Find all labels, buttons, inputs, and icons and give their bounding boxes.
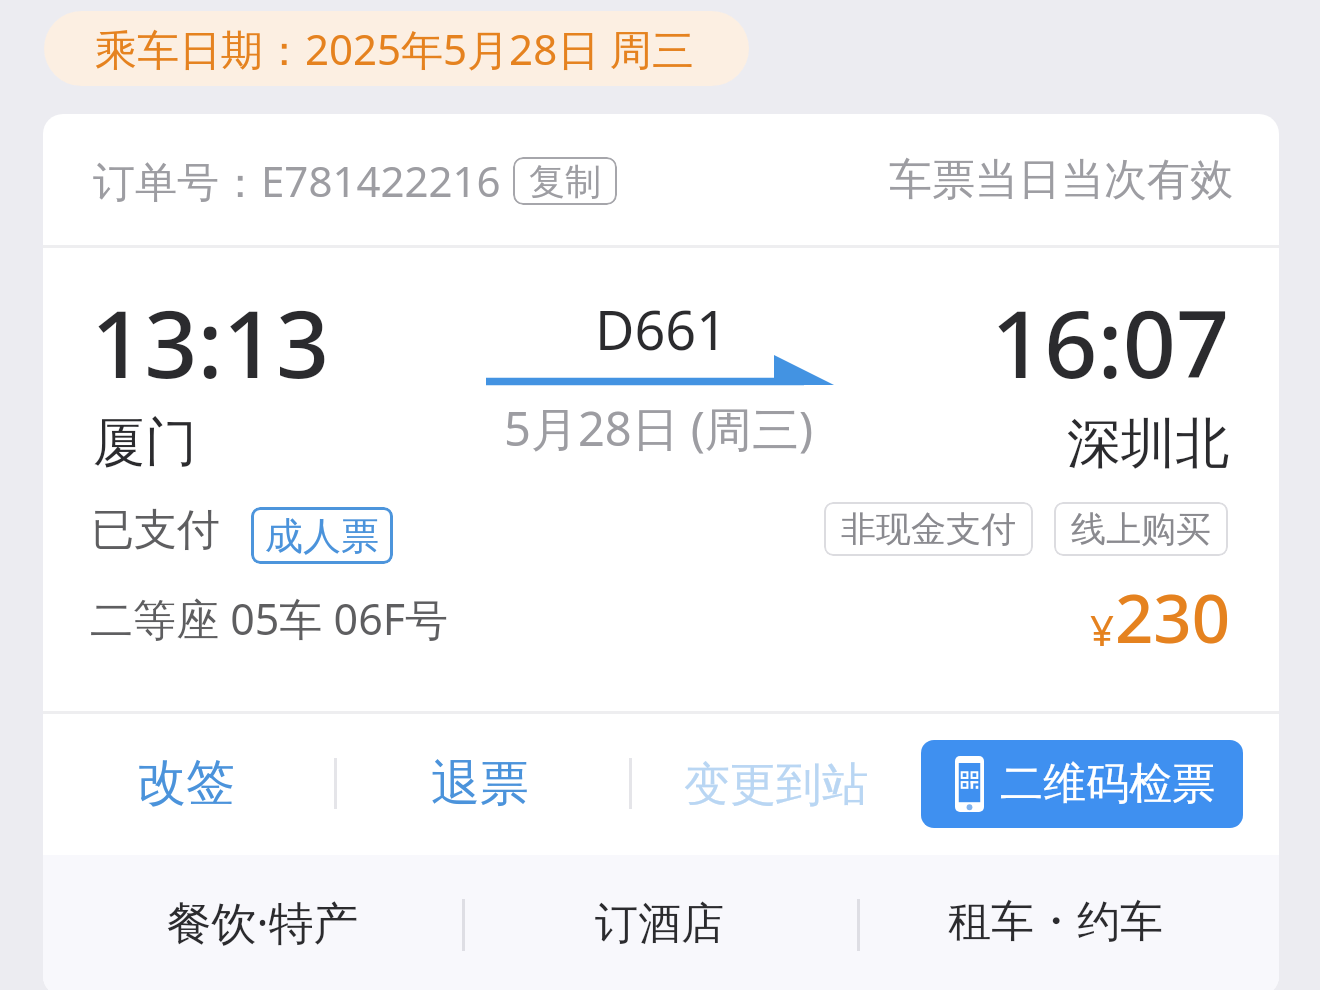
- button[interactable]: 二维码检票: [921, 740, 1243, 828]
- staticText: 16:07: [991, 279, 1230, 406]
- staticText: 230: [1115, 571, 1230, 662]
- button[interactable]: 变更到站: [668, 744, 884, 826]
- button[interactable]: 乘车日期：2025年5月28日 周三: [44, 11, 749, 86]
- staticText: 订酒店: [595, 897, 724, 951]
- button[interactable]: 复制: [513, 157, 617, 205]
- staticText: 复制: [529, 159, 601, 204]
- button[interactable]: 餐饮·特产: [107, 876, 417, 966]
- staticText: 二等座 05车 06F号: [90, 589, 449, 648]
- button[interactable]: 线上购买: [1054, 502, 1228, 556]
- staticText: ¥: [1090, 601, 1115, 658]
- staticText: 深圳北: [1067, 410, 1229, 478]
- staticText: 变更到站: [684, 756, 868, 814]
- staticText: 餐饮·特产: [166, 891, 359, 952]
- staticText: 改签: [137, 752, 235, 814]
- button[interactable]: 非现金支付: [824, 502, 1033, 556]
- button[interactable]: 退票: [415, 741, 545, 827]
- staticText: 非现金支付: [841, 507, 1016, 551]
- staticText: 已支付: [91, 503, 220, 557]
- button[interactable]: 租车・约车: [900, 877, 1210, 967]
- button[interactable]: 订酒店: [567, 879, 752, 969]
- staticText: 成人票: [265, 512, 379, 560]
- staticText: 线上购买: [1071, 507, 1211, 551]
- staticText: 订单号：E781422216: [93, 152, 501, 209]
- staticText: 13:13: [91, 279, 330, 406]
- button[interactable]: 成人票: [251, 507, 393, 564]
- staticText: 二维码检票: [1000, 757, 1215, 811]
- staticText: 车票当日当次有效: [889, 153, 1233, 207]
- staticText: 厦门: [93, 410, 197, 476]
- staticText: 5月28日 (周三): [504, 396, 814, 460]
- button[interactable]: 改签: [121, 740, 251, 826]
- staticText: 租车・约车: [948, 895, 1163, 949]
- staticText: 乘车日期：2025年5月28日 周三: [95, 20, 695, 77]
- staticText: D661: [595, 292, 728, 366]
- staticText: 退票: [431, 753, 529, 815]
- other: 二维码检票: [955, 756, 984, 812]
